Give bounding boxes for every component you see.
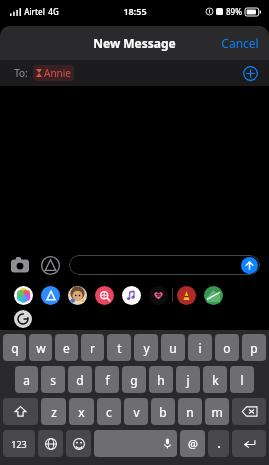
staticText: q [11,340,19,356]
button[interactable]: App [177,286,196,305]
button[interactable]: Shift [3,398,38,425]
staticText: h [157,372,165,388]
staticText: o [223,340,231,356]
button[interactable]: l [230,366,254,393]
button[interactable]: j [176,366,200,393]
staticText: e [63,340,70,356]
staticText: To: [14,66,28,80]
button[interactable]: e [55,334,78,361]
button[interactable]: y [134,334,158,361]
staticText: t [117,340,122,356]
staticText: u [169,340,177,356]
staticText: v [133,404,140,420]
button[interactable]: App Store [40,255,60,275]
button[interactable]: r [81,334,104,361]
button[interactable]: Language [38,430,63,457]
staticText: r [90,340,95,356]
button[interactable]: h [149,366,173,393]
button[interactable]: w [29,334,52,361]
button[interactable]: Send [241,257,258,274]
button[interactable]: s [41,366,65,393]
button[interactable]: x [69,398,94,425]
button[interactable]: v [124,398,148,425]
staticText: s [50,372,56,388]
staticText: New Message [93,35,176,51]
button[interactable]: Google [14,310,32,328]
staticText: j [186,372,190,388]
button[interactable]: App [95,286,114,305]
button[interactable]: m [205,398,229,425]
button[interactable]: App [122,286,141,305]
button[interactable]: Cancel [211,29,269,57]
button[interactable]: Annie [33,65,74,81]
button[interactable]: z [41,398,66,425]
button[interactable]: n [178,398,202,425]
staticText: 89% [226,6,242,17]
button[interactable]: Send [69,255,260,275]
button[interactable]: Emoji [66,430,91,457]
button[interactable]: Space [94,430,177,457]
button[interactable]: d [68,366,92,393]
button[interactable]: Period [208,430,229,457]
staticText: z [51,404,57,420]
button[interactable]: Add contact [241,64,259,82]
button[interactable]: i [188,334,212,361]
staticText: 4G [48,6,59,17]
staticText: x [78,404,85,420]
button[interactable]: f [95,366,119,393]
staticText: Cancel [221,35,259,51]
button[interactable]: App [68,286,87,305]
staticText: m [211,404,223,420]
button[interactable]: b [151,398,175,425]
staticText: b [159,404,167,420]
button[interactable]: t [107,334,131,361]
button[interactable]: Backspace [232,398,266,425]
button[interactable]: q [3,334,26,361]
staticText: k [212,372,219,388]
staticText: w [36,340,46,356]
button[interactable]: App [204,286,223,305]
button[interactable]: o [215,334,239,361]
button[interactable]: g [122,366,146,393]
staticText: f [105,372,110,388]
button[interactable]: Numbers [3,430,35,457]
staticText: . [217,436,221,451]
staticText: Airtel [24,6,45,17]
button[interactable]: At sign [180,430,205,457]
staticText: g [130,372,138,388]
staticText: a [23,372,30,388]
button[interactable]: u [161,334,185,361]
staticText: p [250,340,258,356]
button[interactable]: p [242,334,266,361]
staticText: n [186,404,194,420]
button[interactable]: Camera [9,254,31,276]
staticText: 123 [11,438,27,450]
button[interactable]: App [149,286,168,305]
staticText: i [198,340,202,356]
staticText: d [76,372,84,388]
staticText: y [143,340,150,356]
button[interactable]: App [14,286,33,305]
button[interactable]: App [41,286,60,305]
button[interactable]: Return [232,430,266,457]
staticText: l [240,372,244,388]
staticText: @ [188,436,198,451]
staticText: Annie [44,66,71,80]
staticText: 18:55 [123,5,147,17]
button[interactable]: c [97,398,121,425]
staticText: c [106,404,112,420]
button[interactable]: a [15,366,38,393]
button[interactable]: k [203,366,227,393]
